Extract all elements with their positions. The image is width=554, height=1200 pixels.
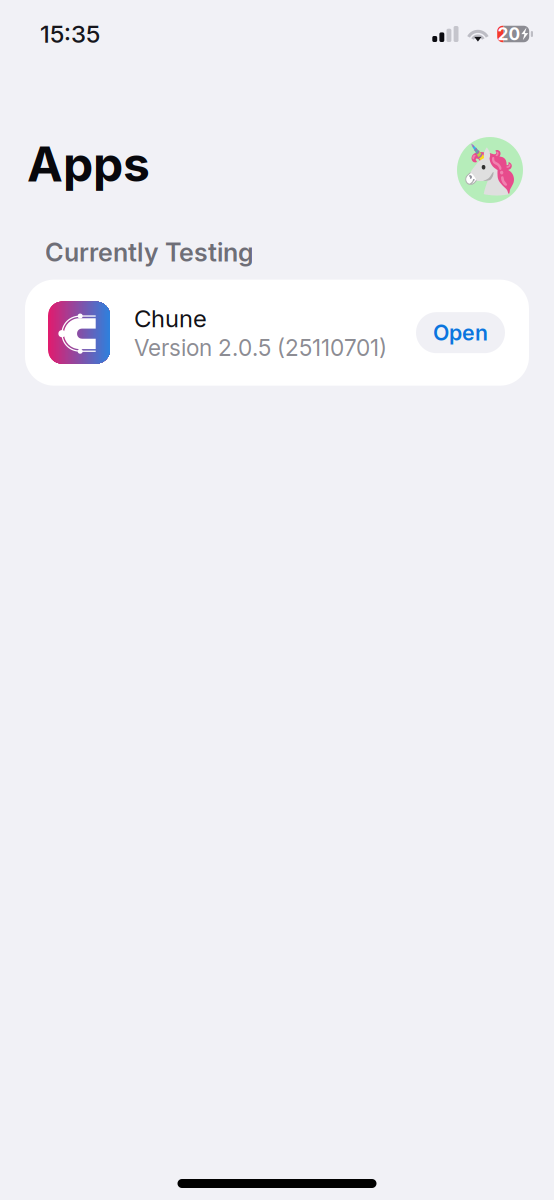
staticText: Version 2.0.5 (25110701) [134, 334, 387, 361]
staticText: 🦄 [460, 142, 520, 198]
staticText: Open [433, 320, 488, 345]
staticText: Currently Testing [45, 237, 254, 268]
button[interactable]: Open [416, 312, 505, 353]
staticText: Chune [134, 304, 207, 333]
button[interactable]: Account [457, 137, 523, 203]
staticText: Apps [27, 135, 150, 193]
staticText: 15:35 [40, 19, 100, 48]
staticText: 20 [497, 23, 520, 44]
